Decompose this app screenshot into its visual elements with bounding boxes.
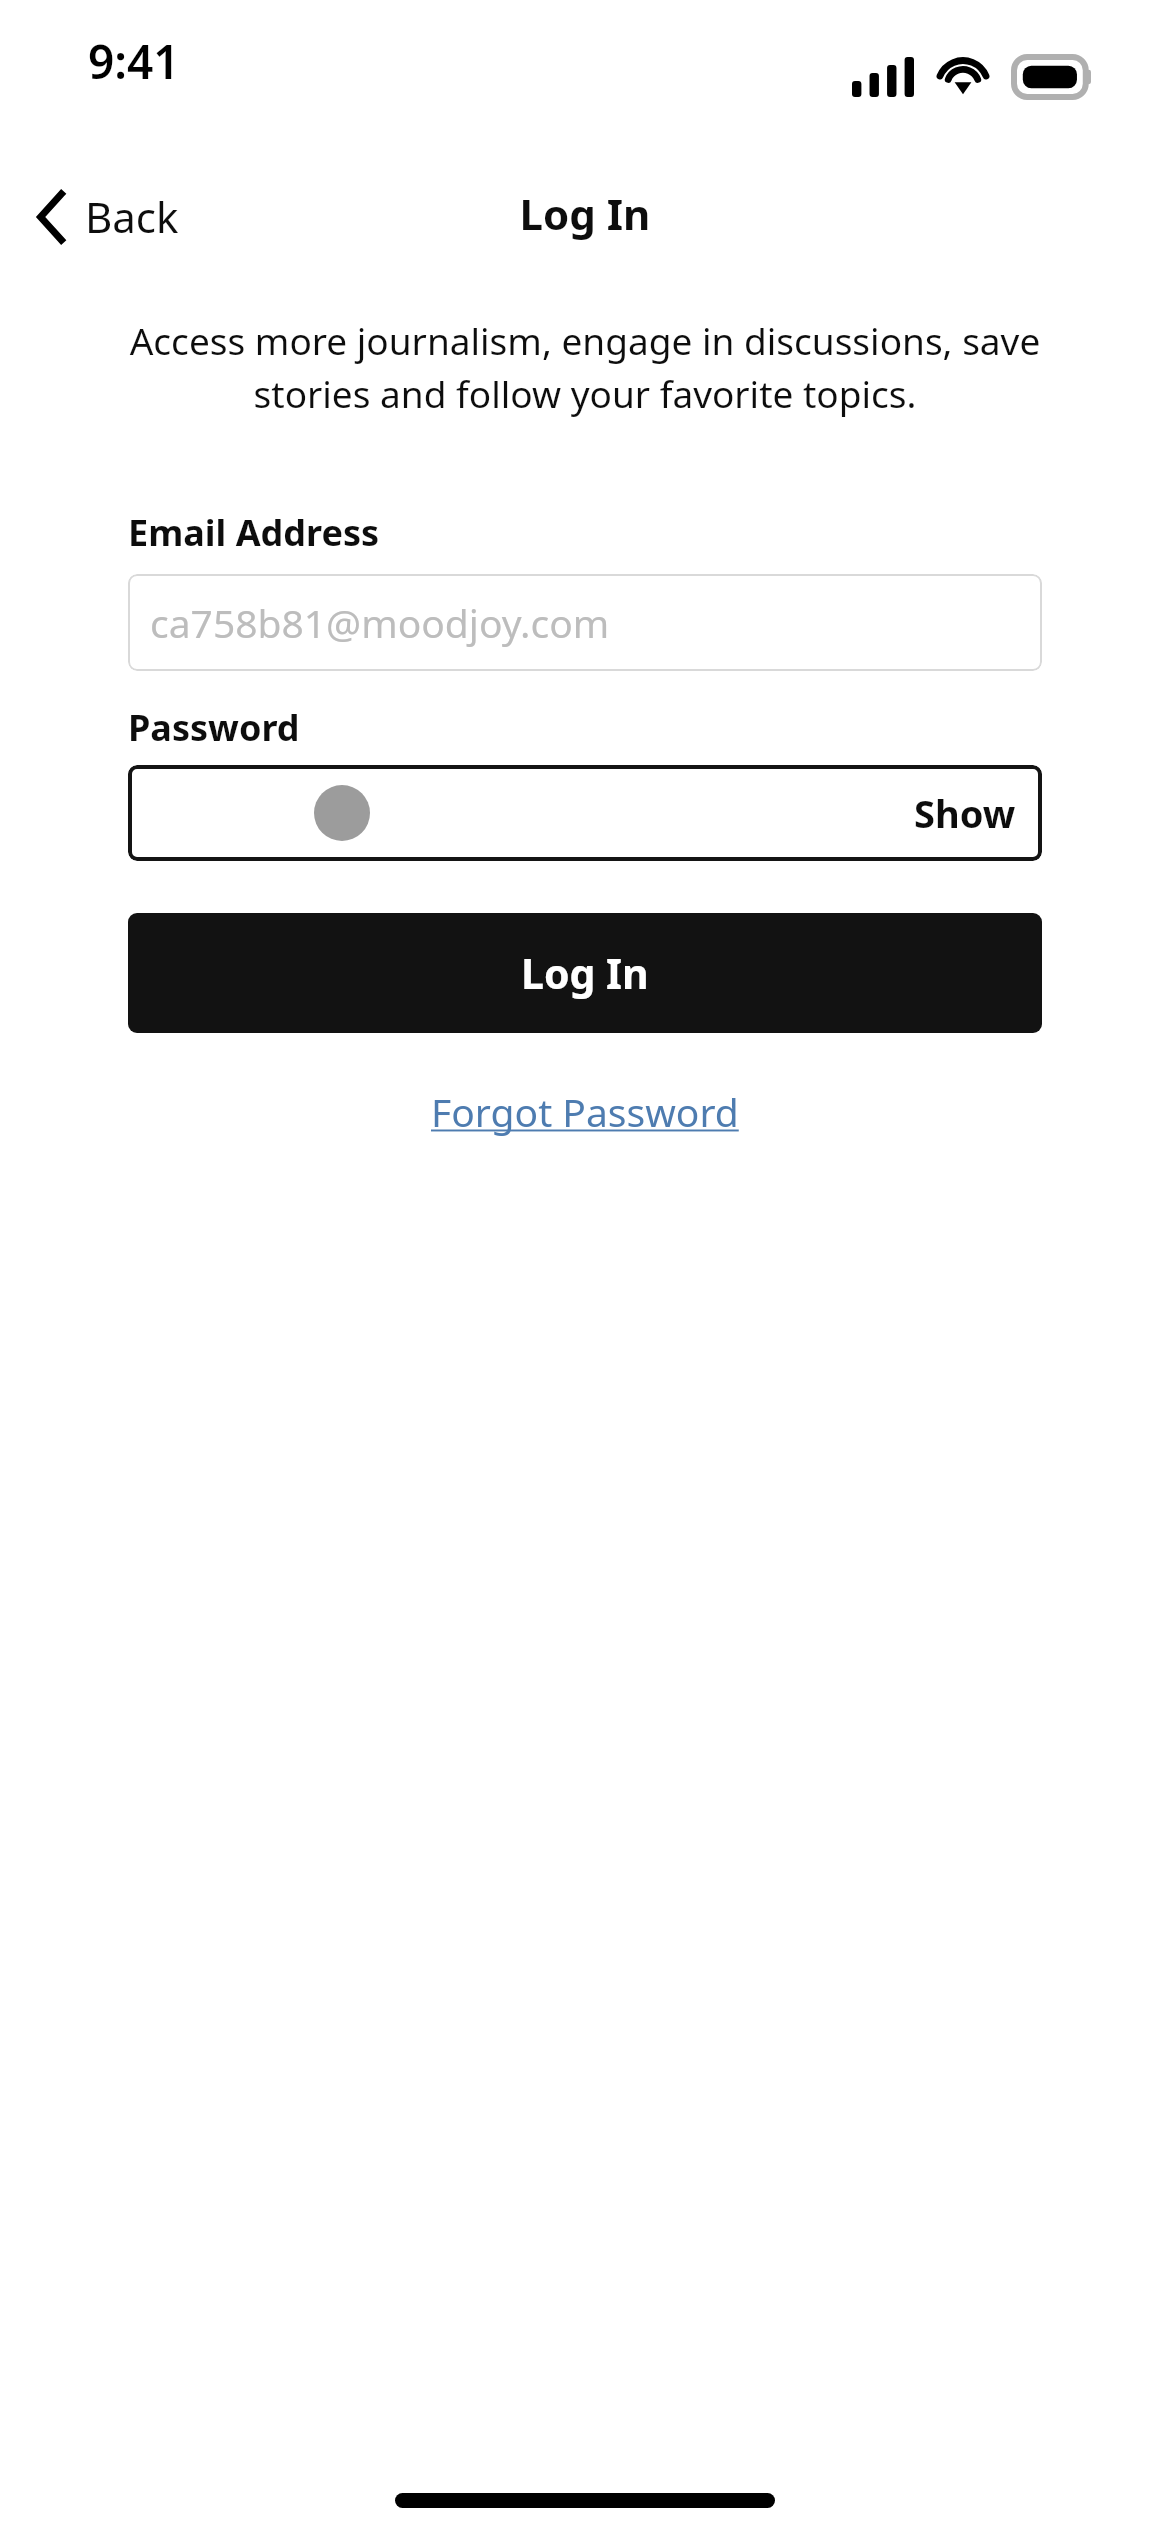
button[interactable]: Back [24,176,193,257]
button[interactable]: ca758b81@moodjoy.com [128,574,1042,671]
staticText: Log In [521,945,649,1001]
button[interactable]: Log In [128,913,1042,1033]
staticText: Back [85,188,179,245]
staticText: Forgot Password [431,1085,739,1138]
staticText: Access more journalism, engage in discus… [104,315,1066,419]
staticText: Show [914,787,1016,839]
button[interactable]: Forgot Password [421,1077,749,1146]
staticText: Log In [0,185,1170,242]
button[interactable]: Show [128,765,1042,861]
staticText: Password [128,703,300,752]
button[interactable]: Show [888,773,1042,853]
staticText: 9:41 [88,30,180,93]
staticText: Email Address [128,508,380,557]
staticText: ca758b81@moodjoy.com [150,596,610,649]
